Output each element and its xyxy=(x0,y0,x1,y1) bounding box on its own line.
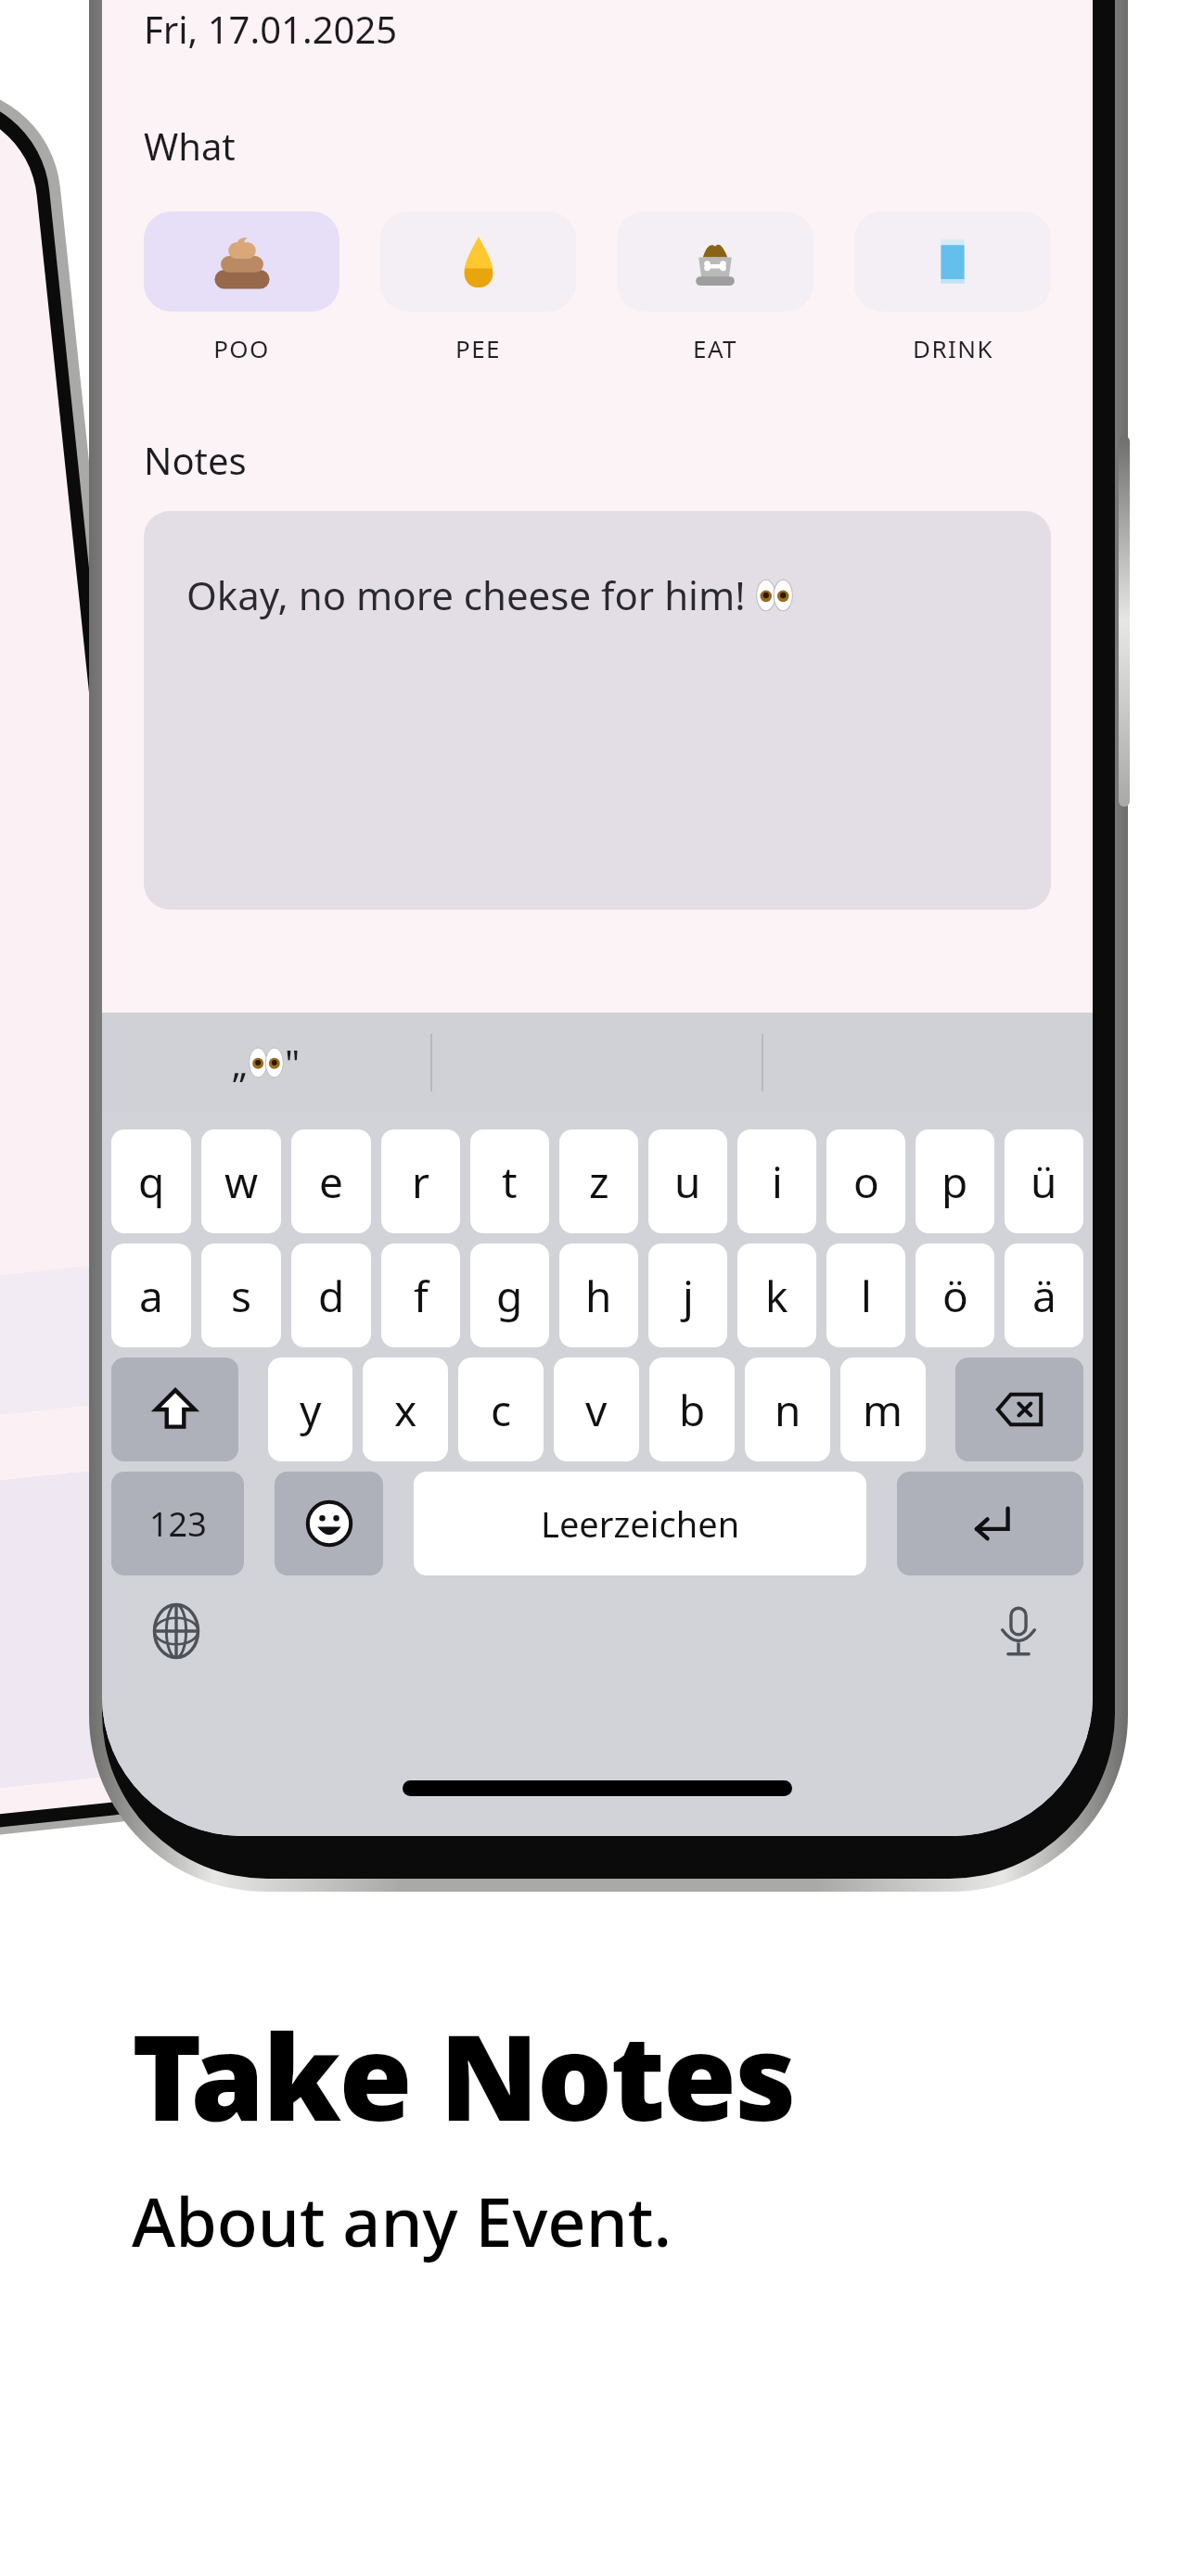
button[interactable]: g xyxy=(470,1243,549,1347)
staticText: ö xyxy=(942,1267,968,1325)
button[interactable]: r xyxy=(381,1129,460,1233)
staticText: " xyxy=(285,1038,301,1088)
staticText: ü xyxy=(1031,1153,1057,1211)
button[interactable]: h xyxy=(559,1243,638,1347)
staticText: PEE xyxy=(455,332,501,364)
button[interactable]: x xyxy=(363,1358,448,1461)
staticText: d xyxy=(318,1267,345,1325)
staticText: EAT xyxy=(693,332,737,364)
button[interactable]: Leerzeichen xyxy=(414,1472,866,1575)
button[interactable]: a xyxy=(111,1243,191,1347)
button[interactable]: POO xyxy=(144,211,339,364)
staticText: b xyxy=(679,1381,706,1439)
button[interactable]: z xyxy=(559,1129,638,1233)
button[interactable]: s xyxy=(201,1243,281,1347)
staticText: „ xyxy=(232,1038,248,1088)
staticText: About any Event. xyxy=(132,2175,672,2266)
staticText: a xyxy=(139,1267,163,1325)
staticText: Okay, no more cheese for him! xyxy=(186,568,746,621)
staticText: x xyxy=(394,1381,417,1439)
button[interactable]: EAT xyxy=(617,211,813,364)
button[interactable]: Okay, no more cheese for him! xyxy=(144,511,1051,910)
button[interactable]: p xyxy=(916,1129,994,1233)
staticText: c xyxy=(491,1381,512,1439)
staticText: u xyxy=(674,1153,701,1211)
staticText: s xyxy=(231,1267,252,1325)
staticText: Notes xyxy=(144,435,247,485)
staticText: r xyxy=(412,1153,429,1211)
button[interactable]: d xyxy=(291,1243,371,1347)
button[interactable]: f xyxy=(381,1243,460,1347)
button[interactable]: v xyxy=(554,1358,639,1461)
button[interactable]: 123 xyxy=(111,1472,244,1575)
staticText: n xyxy=(775,1381,801,1439)
button[interactable]: ö xyxy=(916,1243,994,1347)
button[interactable]: Shift xyxy=(111,1358,238,1461)
staticText: f xyxy=(414,1267,429,1325)
button[interactable]: w xyxy=(201,1129,281,1233)
button[interactable]: i xyxy=(737,1129,816,1233)
staticText: h xyxy=(585,1267,612,1325)
button[interactable]: DRINK xyxy=(854,211,1051,364)
button[interactable]: n xyxy=(745,1358,830,1461)
button[interactable]: Emoji xyxy=(275,1472,383,1575)
staticText: 123 xyxy=(149,1501,207,1547)
staticText: q xyxy=(138,1153,165,1211)
button[interactable]: e xyxy=(291,1129,371,1233)
staticText: k xyxy=(765,1267,788,1325)
staticText: g xyxy=(496,1267,523,1325)
button[interactable]: PEE xyxy=(380,211,576,364)
staticText: What xyxy=(144,121,236,171)
staticText: m xyxy=(863,1381,903,1439)
staticText: o xyxy=(853,1153,879,1211)
staticText: Take Notes xyxy=(132,1994,795,2155)
button[interactable]: y xyxy=(268,1358,352,1461)
staticText: l xyxy=(861,1267,872,1325)
button[interactable]: Change keyboard language xyxy=(141,1596,211,1666)
staticText: y xyxy=(300,1381,322,1439)
staticText: w xyxy=(224,1153,259,1211)
button[interactable]: o xyxy=(826,1129,905,1233)
staticText: ä xyxy=(1032,1267,1057,1325)
staticText: DRINK xyxy=(913,332,993,364)
staticText: Leerzeichen xyxy=(541,1499,740,1548)
button[interactable]: k xyxy=(737,1243,816,1347)
staticText: POO xyxy=(213,332,270,364)
button[interactable]: j xyxy=(648,1243,727,1347)
button[interactable]: m xyxy=(840,1358,926,1461)
button[interactable]: Backspace xyxy=(955,1358,1083,1461)
button[interactable]: t xyxy=(470,1129,549,1233)
staticText: i xyxy=(772,1153,783,1211)
button[interactable]: u xyxy=(648,1129,727,1233)
button[interactable]: „ xyxy=(102,1013,430,1113)
button[interactable]: l xyxy=(826,1243,905,1347)
staticText: v xyxy=(585,1381,608,1439)
button[interactable]: Return xyxy=(897,1472,1083,1575)
staticText: e xyxy=(319,1153,343,1211)
button[interactable]: q xyxy=(111,1129,191,1233)
button[interactable]: ä xyxy=(1005,1243,1083,1347)
button[interactable]: c xyxy=(458,1358,544,1461)
staticText: z xyxy=(589,1153,609,1211)
staticText: j xyxy=(683,1267,694,1325)
button[interactable]: Dictation xyxy=(983,1596,1054,1666)
button[interactable]: ü xyxy=(1005,1129,1083,1233)
staticText: t xyxy=(502,1153,518,1211)
button[interactable]: b xyxy=(649,1358,735,1461)
staticText: Fri, 17.01.2025 xyxy=(144,4,398,54)
staticText: p xyxy=(941,1153,968,1211)
